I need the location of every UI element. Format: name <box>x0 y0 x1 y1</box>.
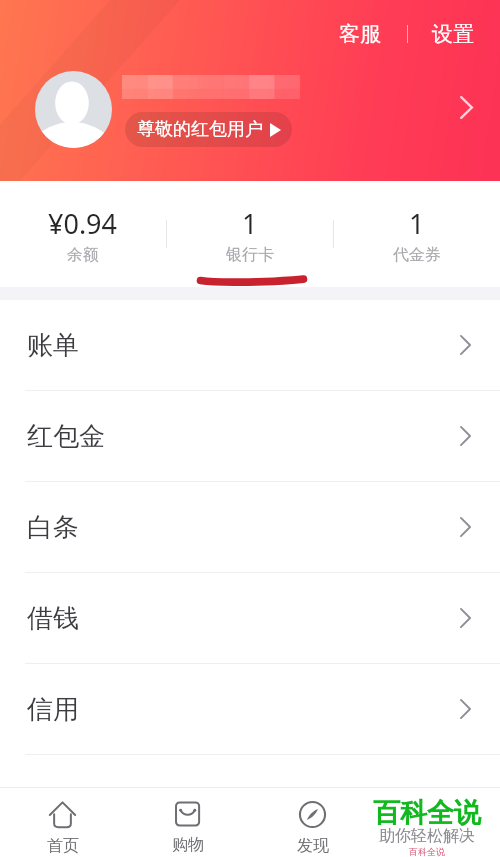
staticText: 百科全说 <box>409 846 445 857</box>
button[interactable]: Avatar <box>35 71 112 148</box>
button[interactable]: Home <box>0 787 125 856</box>
staticText: 白条 <box>27 511 79 544</box>
button[interactable]: 信用 <box>0 664 500 754</box>
staticText: 余额 <box>67 245 99 265</box>
button[interactable]: 设置 <box>394 16 489 52</box>
staticText: 1 <box>409 205 425 242</box>
staticText: 首页 <box>47 836 79 856</box>
button[interactable]: 账单 <box>0 300 500 390</box>
button[interactable]: 借钱 <box>0 573 500 663</box>
staticText: 客服 <box>339 21 381 47</box>
staticText: 百科全说 <box>373 796 481 830</box>
staticText: 尊敬的红包用户 <box>137 118 263 141</box>
other: Shopping <box>174 801 201 827</box>
staticText: 1 <box>242 205 258 242</box>
button[interactable]: 红包金 <box>0 391 500 481</box>
staticText: 发现 <box>297 836 329 856</box>
button[interactable]: 1 <box>333 181 500 265</box>
staticText: 助你轻松解决 <box>379 826 475 846</box>
staticText: ¥0.94 <box>48 205 118 242</box>
staticText: 账单 <box>27 329 79 362</box>
other: Discover <box>299 801 326 828</box>
staticText: 银行卡 <box>226 245 274 265</box>
staticText: 借钱 <box>27 602 79 635</box>
button[interactable]: 1 <box>166 181 333 265</box>
button[interactable]: Discover <box>250 787 375 856</box>
button[interactable]: 白条 <box>0 482 500 572</box>
button[interactable]: ¥0.94 <box>0 181 166 265</box>
staticText: 理财 <box>27 784 79 817</box>
staticText: 红包金 <box>27 420 105 453</box>
button[interactable]: 尊敬的红包用户 <box>125 112 292 147</box>
button[interactable]: Shopping <box>125 787 250 855</box>
staticText: 代金券 <box>393 245 441 265</box>
button[interactable]: 客服 <box>327 16 393 52</box>
staticText: 设置 <box>432 21 474 47</box>
staticText: 购物 <box>172 835 204 855</box>
button[interactable]: 理财 <box>0 755 500 845</box>
staticText: 信用 <box>27 693 79 726</box>
other: Home <box>49 801 76 828</box>
button[interactable]: Account details <box>460 96 473 119</box>
